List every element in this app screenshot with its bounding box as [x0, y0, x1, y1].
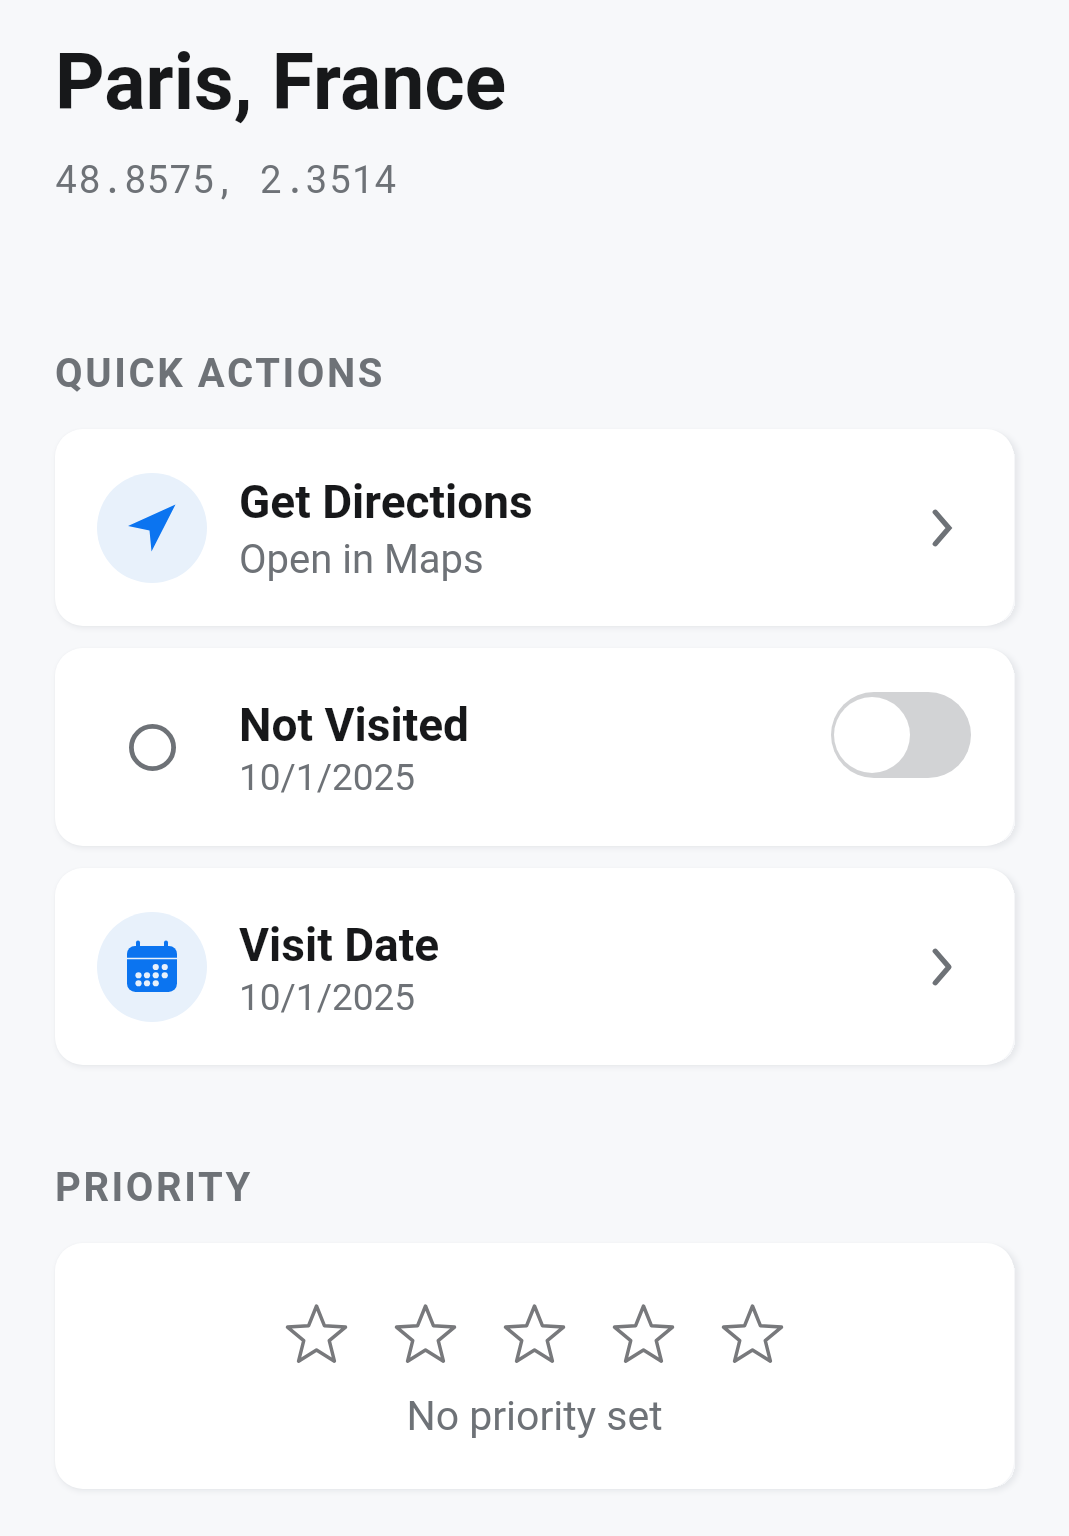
- staticText: 10/1/2025: [239, 976, 416, 1019]
- staticText: Get Directions: [239, 475, 533, 529]
- staticText: Visit Date: [239, 918, 440, 972]
- staticText: QUICK ACTIONS: [55, 350, 386, 397]
- button[interactable]: Set priority 2: [371, 1300, 480, 1372]
- staticText: No priority set: [406, 1392, 663, 1440]
- button[interactable]: Visited toggle: [831, 692, 971, 778]
- staticText: Open in Maps: [239, 536, 484, 583]
- staticText: 10/1/2025: [239, 756, 416, 799]
- button[interactable]: Get Directions, Open in Maps: [55, 429, 1014, 626]
- button[interactable]: Set priority 4: [589, 1300, 698, 1372]
- staticText: PRIORITY: [55, 1164, 253, 1211]
- button[interactable]: Visit Date, 10/1/2025: [55, 868, 1014, 1065]
- staticText: 48.8575, 2.3514: [55, 153, 398, 203]
- button[interactable]: Priority rating: [55, 1243, 1014, 1489]
- staticText: Not Visited: [239, 698, 469, 752]
- button[interactable]: Open: [910, 936, 972, 998]
- button[interactable]: Not Visited, 10/1/2025: [55, 648, 1014, 846]
- button[interactable]: Open: [910, 497, 972, 559]
- button[interactable]: Set priority 5: [698, 1300, 807, 1372]
- staticText: Paris, France: [55, 38, 507, 128]
- button[interactable]: Set priority 1: [262, 1300, 371, 1372]
- button[interactable]: Set priority 3: [480, 1300, 589, 1372]
